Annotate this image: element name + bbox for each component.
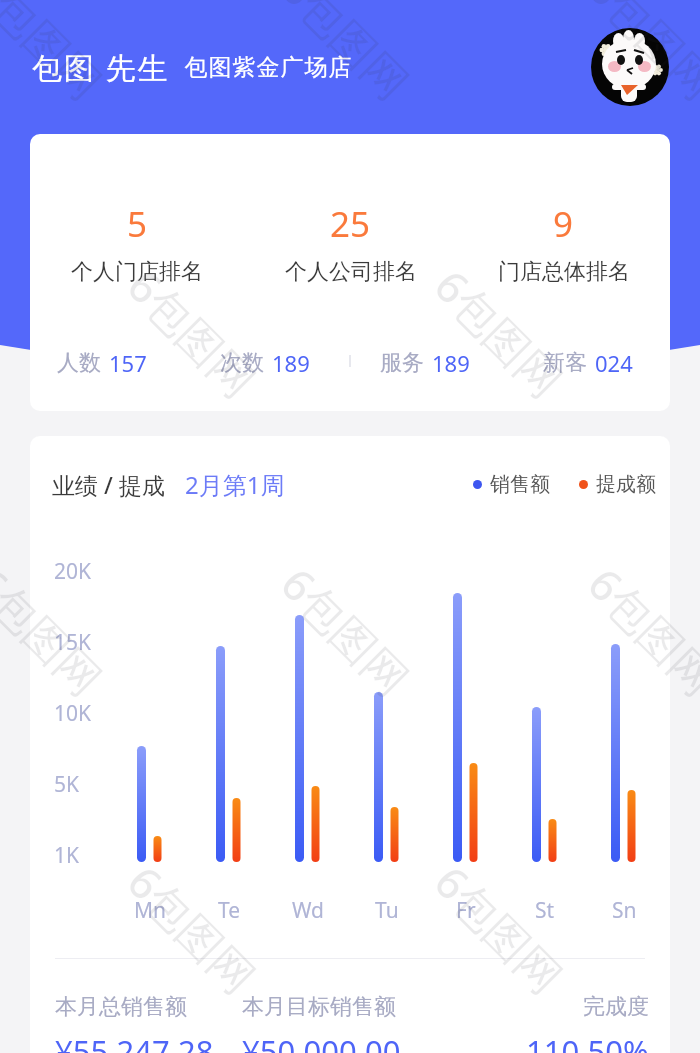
staticText: 本月总销售额 bbox=[55, 993, 187, 1021]
staticText: 189 bbox=[432, 348, 470, 378]
staticText: Mn bbox=[134, 896, 167, 925]
button[interactable]: 新客 bbox=[543, 348, 633, 378]
staticText: 本月目标销售额 bbox=[242, 993, 396, 1021]
staticText: 20K bbox=[54, 557, 92, 586]
staticText: 完成度 bbox=[583, 993, 649, 1021]
staticText: Fr bbox=[456, 896, 476, 925]
staticText: 10K bbox=[54, 699, 92, 728]
staticText: 业绩 / 提成 bbox=[52, 469, 165, 500]
staticText: 包图 先生 bbox=[32, 47, 170, 88]
staticText: 024 bbox=[595, 348, 633, 378]
staticText: Tu bbox=[375, 896, 399, 925]
button[interactable]: 9 bbox=[457, 200, 670, 286]
staticText: 新客 bbox=[543, 349, 587, 377]
staticText: Wd bbox=[292, 896, 325, 925]
staticText: 包图紫金广场店 bbox=[184, 53, 352, 82]
staticText: Sn bbox=[612, 896, 637, 925]
staticText: Te bbox=[218, 896, 241, 925]
staticText: 销售额 bbox=[490, 472, 550, 497]
staticText: St bbox=[535, 896, 555, 925]
button[interactable]: 次数 bbox=[220, 348, 310, 378]
staticText: 5K bbox=[54, 770, 80, 799]
staticText: 个人公司排名 bbox=[285, 258, 417, 286]
button[interactable]: 25 bbox=[244, 200, 457, 286]
staticText: 25 bbox=[330, 200, 371, 248]
button[interactable]: 人数 bbox=[57, 348, 147, 378]
staticText: ¥50,000.00 bbox=[242, 1030, 401, 1053]
button[interactable]: 服务 bbox=[380, 348, 470, 378]
staticText: 服务 bbox=[380, 349, 424, 377]
staticText: 157 bbox=[109, 348, 147, 378]
staticText: 9 bbox=[553, 200, 574, 248]
staticText: 人数 bbox=[57, 349, 101, 377]
button[interactable]: 5 bbox=[30, 200, 244, 286]
staticText: 门店总体排名 bbox=[498, 258, 630, 286]
staticText: 189 bbox=[272, 348, 310, 378]
staticText: 个人门店排名 bbox=[71, 258, 203, 286]
staticText: 110.50% bbox=[526, 1030, 649, 1053]
staticText: 15K bbox=[54, 628, 92, 657]
staticText: 1K bbox=[54, 841, 80, 870]
staticText: 2月第1周 bbox=[185, 468, 285, 501]
staticText: 提成额 bbox=[596, 472, 656, 497]
button[interactable]: Profile bbox=[591, 28, 669, 106]
staticText: 次数 bbox=[220, 349, 264, 377]
staticText: 5 bbox=[127, 200, 148, 248]
staticText: ¥55,247.28 bbox=[55, 1030, 214, 1053]
